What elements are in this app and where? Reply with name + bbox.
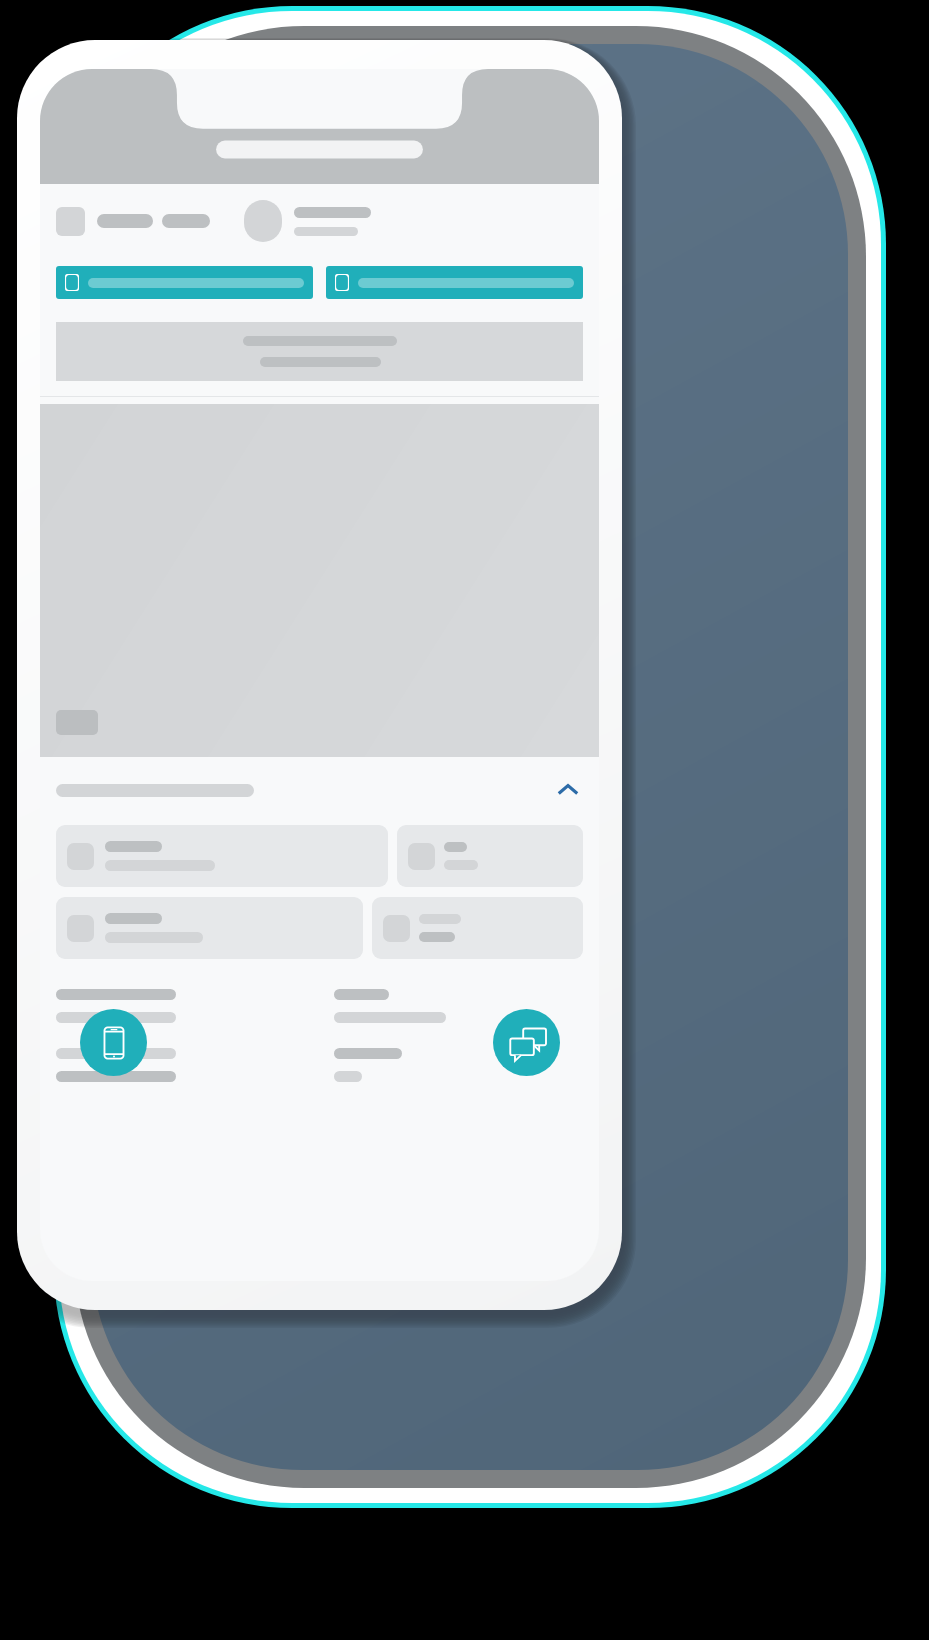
button[interactable] [397,825,583,887]
button[interactable]: Messages [493,1009,560,1076]
button[interactable] [326,266,583,299]
button[interactable]: Call [80,1009,147,1076]
button[interactable] [372,897,583,959]
button[interactable] [56,322,583,381]
button[interactable]: Collapse [553,775,583,805]
button[interactable] [56,825,388,887]
button[interactable] [56,266,313,299]
button[interactable] [56,897,363,959]
